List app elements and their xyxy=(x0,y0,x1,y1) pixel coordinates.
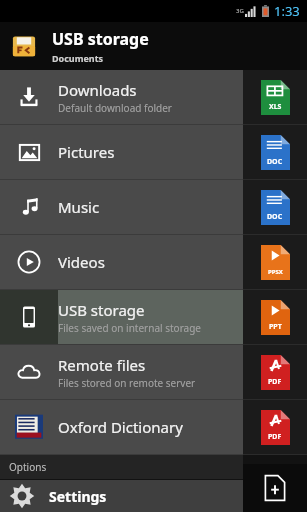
staticText: PDF xyxy=(268,377,282,387)
staticText: USB storage xyxy=(58,300,145,320)
staticText: Pictures xyxy=(58,142,115,162)
staticText: Default download folder xyxy=(58,101,172,115)
staticText: DOC xyxy=(267,212,283,222)
staticText: PDF xyxy=(268,432,282,442)
staticText: Files saved on internal storage xyxy=(58,321,201,335)
button[interactable]: Remote files xyxy=(0,345,243,399)
button[interactable]: USB storage xyxy=(0,290,243,344)
staticText: USB storage xyxy=(52,28,149,50)
staticText: Files stored on remote server xyxy=(58,376,196,390)
staticText: Settings xyxy=(49,487,107,506)
staticText: Oxford Dictionary xyxy=(58,417,183,437)
button[interactable]: XLS file xyxy=(243,70,307,124)
button[interactable]: PDF file xyxy=(243,345,307,399)
staticText: Music xyxy=(58,197,100,217)
button[interactable]: PPSX file xyxy=(243,235,307,289)
button[interactable]: DOC file xyxy=(243,125,307,179)
staticText: DOC xyxy=(267,157,283,167)
button[interactable]: Music xyxy=(0,180,243,234)
button[interactable]: Videos xyxy=(0,235,243,289)
button[interactable]: PPT file xyxy=(243,290,307,344)
button[interactable]: Pictures xyxy=(0,125,243,179)
staticText: XLS xyxy=(269,102,282,112)
button[interactable]: USB storage xyxy=(0,22,307,70)
staticText: Options xyxy=(9,460,47,474)
staticText: 1:33 xyxy=(274,2,300,20)
button[interactable]: New file xyxy=(243,464,307,512)
staticText: Remote files xyxy=(58,355,146,375)
staticText: PPSX xyxy=(268,268,283,276)
button[interactable]: PDF file xyxy=(243,400,307,454)
staticText: Videos xyxy=(58,252,105,272)
staticText: PPT xyxy=(269,322,282,332)
staticText: Documents xyxy=(52,52,104,64)
staticText: Downloads xyxy=(58,80,137,100)
staticText: 3G xyxy=(236,7,244,15)
button[interactable]: DOC file xyxy=(243,180,307,234)
button[interactable]: Settings xyxy=(0,480,243,512)
button[interactable]: Oxford Dictionary xyxy=(0,400,243,454)
button[interactable]: Downloads xyxy=(0,70,243,124)
